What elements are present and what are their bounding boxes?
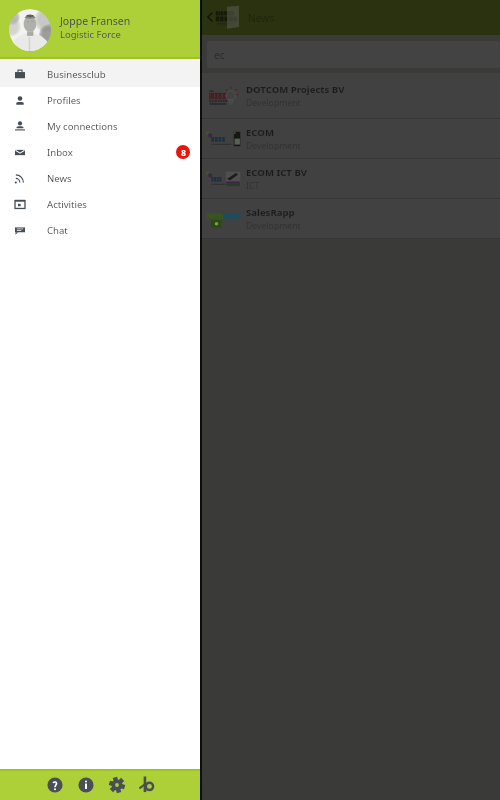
- staticText: Chat: [47, 224, 68, 237]
- button[interactable]: SalesRapp: [0, 199, 500, 238]
- staticText: 8: [181, 147, 186, 158]
- button[interactable]: DOTCOM Projects BV: [0, 73, 500, 118]
- staticText: Profiles: [47, 94, 81, 107]
- staticText: Joppe Fransen: [60, 14, 131, 28]
- staticText: ECOM: [246, 126, 274, 139]
- button[interactable]: Businessclub: [137, 774, 159, 796]
- button[interactable]: Help: [44, 774, 66, 796]
- staticText: Businessclub: [47, 68, 106, 81]
- staticText: Development: [246, 97, 301, 109]
- staticText: DOTCOM Projects BV: [246, 83, 345, 96]
- staticText: Activities: [47, 198, 87, 211]
- button[interactable]: Settings: [106, 774, 128, 796]
- button[interactable]: Profiles: [0, 87, 200, 113]
- staticText: News: [47, 172, 72, 185]
- staticText: News: [248, 11, 275, 25]
- button[interactable]: News: [0, 165, 200, 191]
- staticText: ICT: [246, 180, 260, 192]
- button[interactable]: Profile photo: [9, 9, 51, 51]
- button[interactable]: ECOM ICT BV: [0, 159, 500, 198]
- staticText: Inbox: [47, 146, 73, 159]
- staticText: Development: [246, 140, 301, 152]
- button[interactable]: ECOM: [0, 119, 500, 158]
- button[interactable]: Activities: [0, 191, 200, 217]
- staticText: My connections: [47, 120, 118, 133]
- staticText: Logistic Force: [60, 28, 121, 41]
- button[interactable]: Inbox: [0, 139, 200, 165]
- staticText: ECOM ICT BV: [246, 166, 308, 179]
- staticText: ec: [214, 48, 225, 62]
- button[interactable]: Businessclub: [0, 61, 200, 87]
- button[interactable]: Back: [202, 6, 216, 28]
- staticText: SalesRapp: [246, 206, 295, 219]
- staticText: Development: [246, 220, 301, 232]
- button[interactable]: Information: [75, 774, 97, 796]
- button[interactable]: Chat: [0, 217, 200, 243]
- button[interactable]: My connections: [0, 113, 200, 139]
